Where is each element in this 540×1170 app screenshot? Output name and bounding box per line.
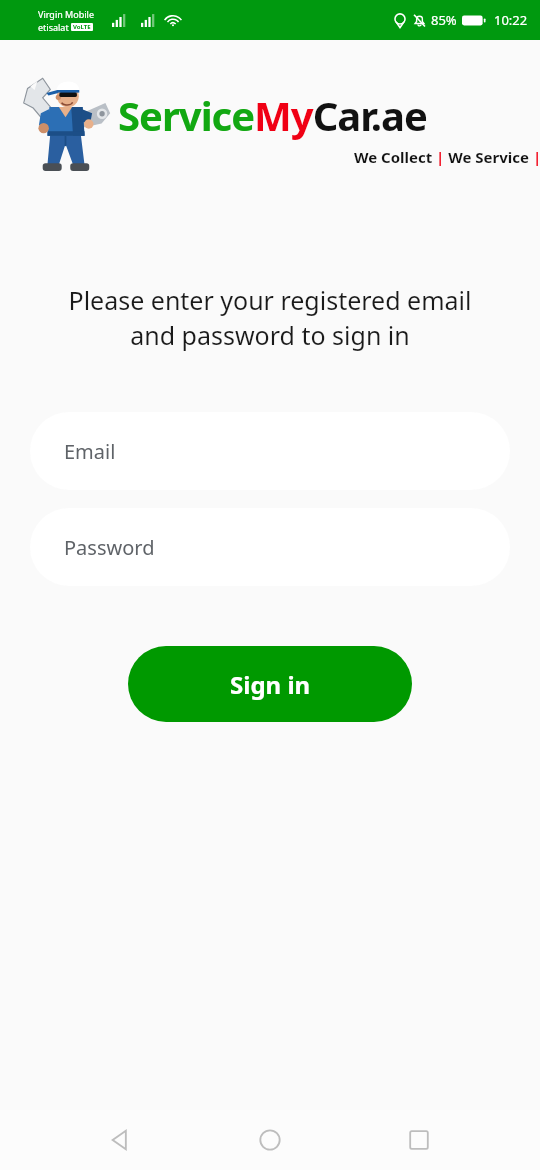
staticText: 85% bbox=[431, 11, 457, 29]
staticText: Sign in bbox=[230, 668, 311, 701]
staticText: Please enter your registered email and p… bbox=[16, 283, 524, 353]
staticText: Email bbox=[64, 438, 116, 465]
button[interactable]: Home bbox=[242, 1112, 298, 1168]
staticText: Password bbox=[64, 534, 155, 561]
staticText: etisalat bbox=[38, 21, 69, 33]
button[interactable]: Password bbox=[30, 508, 510, 586]
button[interactable]: Sign in bbox=[128, 646, 412, 722]
staticText: ServiceMyCar.ae bbox=[118, 88, 427, 142]
button[interactable]: Back bbox=[93, 1112, 149, 1168]
staticText: We Collect | We Service | We Deliver bbox=[354, 147, 540, 167]
button[interactable]: Email bbox=[30, 412, 510, 490]
button[interactable]: Recents bbox=[391, 1112, 447, 1168]
staticText: VoLTE bbox=[73, 23, 91, 31]
staticText: Virgin Mobile bbox=[38, 8, 94, 20]
staticText: 10:22 bbox=[494, 11, 528, 29]
